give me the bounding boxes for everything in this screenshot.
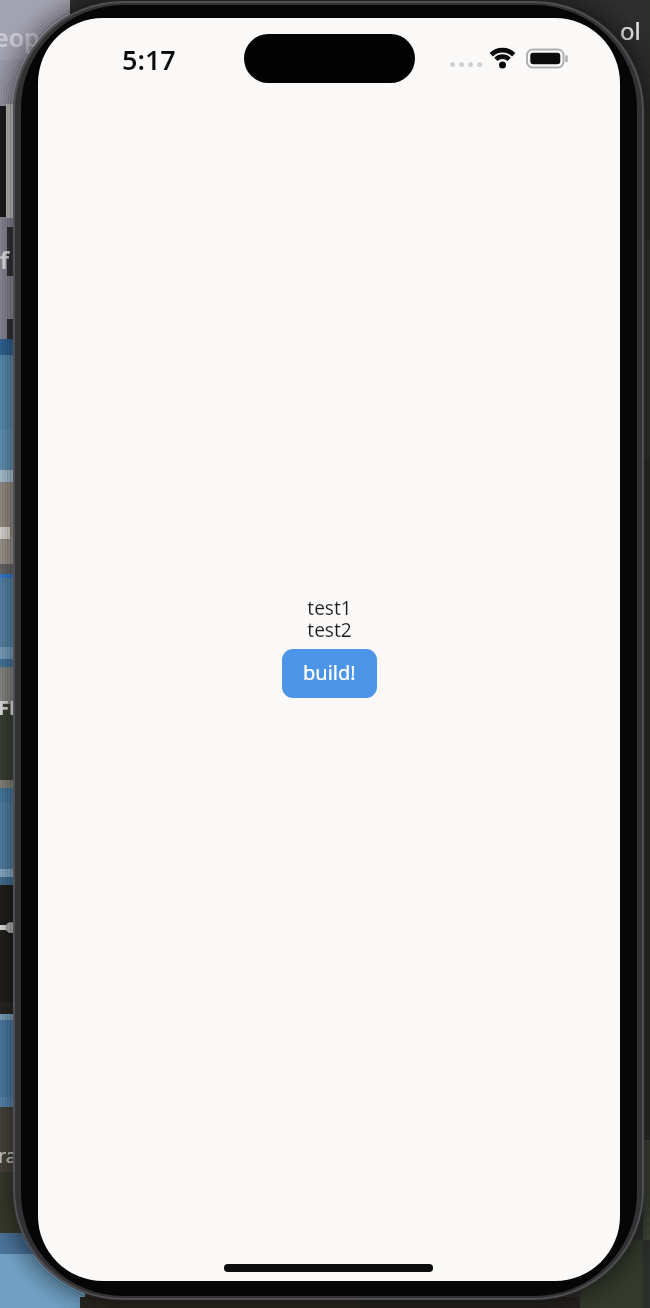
staticText: FD	[0, 694, 24, 721]
staticText: build!	[303, 659, 356, 686]
staticText: ol	[620, 14, 641, 47]
staticText: 5:17	[122, 41, 176, 73]
button[interactable]: build!	[282, 649, 377, 698]
staticText: eop	[0, 20, 40, 54]
staticText: f	[0, 243, 9, 276]
staticText: ra	[0, 1142, 18, 1169]
staticText: test1 test2	[307, 595, 352, 641]
